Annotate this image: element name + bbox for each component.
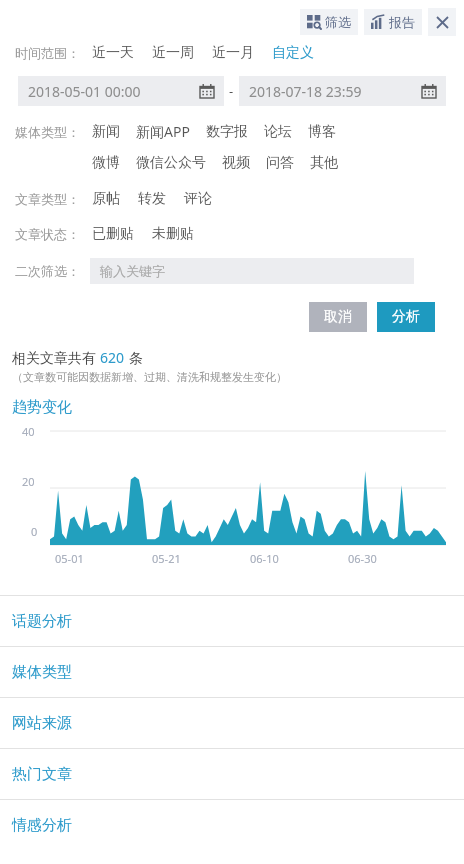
staticText: - (229, 82, 234, 100)
button[interactable]: 输入关键字 (90, 258, 414, 284)
staticText: 新闻APP (136, 122, 190, 141)
staticText: 近一周 (152, 44, 194, 62)
staticText: 2018-05-01 00:00 (28, 82, 141, 101)
staticText: 报告 (389, 14, 415, 30)
staticText: 情感分析 (12, 816, 72, 835)
button[interactable]: 问答 (264, 152, 296, 174)
button[interactable]: 博客 (306, 121, 338, 143)
staticText: 论坛 (264, 123, 292, 141)
button[interactable]: 微信公众号 (134, 152, 208, 174)
staticText: 未删贴 (152, 225, 194, 243)
staticText: 0 (31, 524, 38, 539)
staticText: 网站来源 (12, 714, 72, 733)
staticText: 05-01 (55, 551, 84, 566)
button[interactable]: 视频 (220, 152, 252, 174)
staticText: 媒体类型： (0, 124, 80, 140)
staticText: 问答 (266, 154, 294, 172)
staticText: 博客 (308, 123, 336, 141)
staticText: 输入关键字 (100, 263, 165, 279)
staticText: 其他 (310, 154, 338, 172)
button[interactable]: 自定义 (270, 42, 316, 64)
button[interactable]: 媒体类型 (0, 647, 464, 697)
button[interactable]: 评论 (182, 188, 214, 210)
button[interactable]: 筛选 (300, 9, 358, 35)
staticText: 文章类型： (0, 191, 80, 207)
button[interactable]: 转发 (136, 188, 168, 210)
button[interactable]: 近一天 (90, 42, 136, 64)
staticText: 微信公众号 (136, 154, 206, 172)
staticText: 近一月 (212, 44, 254, 62)
staticText: 近一天 (92, 44, 134, 62)
staticText: 分析 (392, 308, 420, 326)
button[interactable]: 新闻APP (134, 120, 192, 143)
staticText: （文章数可能因数据新增、过期、清洗和规整发生变化） (12, 370, 287, 384)
button[interactable]: 数字报 (204, 121, 250, 143)
button[interactable]: 热门文章 (0, 749, 464, 799)
button[interactable]: 未删贴 (150, 223, 196, 245)
button[interactable]: 原帖 (90, 188, 122, 210)
staticText: 2018-07-18 23:59 (249, 82, 362, 101)
staticText: 话题分析 (12, 612, 72, 631)
staticText: 媒体类型 (12, 663, 72, 682)
staticText: 评论 (184, 190, 212, 208)
staticText: 二次筛选： (0, 263, 80, 279)
staticText: 相关文章共有 (12, 348, 100, 367)
staticText: 视频 (222, 154, 250, 172)
staticText: 06-10 (250, 551, 279, 566)
button[interactable]: 近一月 (210, 42, 256, 64)
button[interactable]: 2018-05-01 00:00 (18, 76, 224, 106)
staticText: 05-21 (152, 551, 181, 566)
button[interactable]: 新闻 (90, 121, 122, 143)
button[interactable]: 关闭 (428, 8, 456, 36)
button[interactable]: 报告 (364, 9, 422, 35)
staticText: 微博 (92, 154, 120, 172)
staticText: 趋势变化 (12, 398, 72, 417)
staticText: 筛选 (325, 14, 351, 30)
button[interactable]: 情感分析 (0, 800, 464, 850)
staticText: 取消 (324, 308, 352, 326)
staticText: 热门文章 (12, 765, 72, 784)
staticText: 40 (22, 424, 35, 439)
button[interactable]: 取消 (309, 302, 367, 332)
staticText: 新闻 (92, 123, 120, 141)
staticText: 文章状态： (0, 226, 80, 242)
staticText: 数字报 (206, 123, 248, 141)
staticText: 原帖 (92, 190, 120, 208)
button[interactable]: 已删贴 (90, 223, 136, 245)
staticText: 转发 (138, 190, 166, 208)
staticText: 自定义 (272, 44, 314, 62)
button[interactable]: 网站来源 (0, 698, 464, 748)
button[interactable]: 2018-07-18 23:59 (239, 76, 446, 106)
button[interactable]: 近一周 (150, 42, 196, 64)
button[interactable]: 其他 (308, 152, 340, 174)
staticText: 620 (100, 348, 125, 367)
staticText: 已删贴 (92, 225, 134, 243)
staticText: 06-30 (348, 551, 377, 566)
button[interactable]: 微博 (90, 152, 122, 174)
button[interactable]: 论坛 (262, 121, 294, 143)
staticText: 20 (22, 474, 35, 489)
button[interactable]: 话题分析 (0, 596, 464, 646)
staticText: 条 (125, 348, 143, 367)
button[interactable]: 分析 (377, 302, 435, 332)
staticText: 时间范围： (0, 45, 80, 61)
